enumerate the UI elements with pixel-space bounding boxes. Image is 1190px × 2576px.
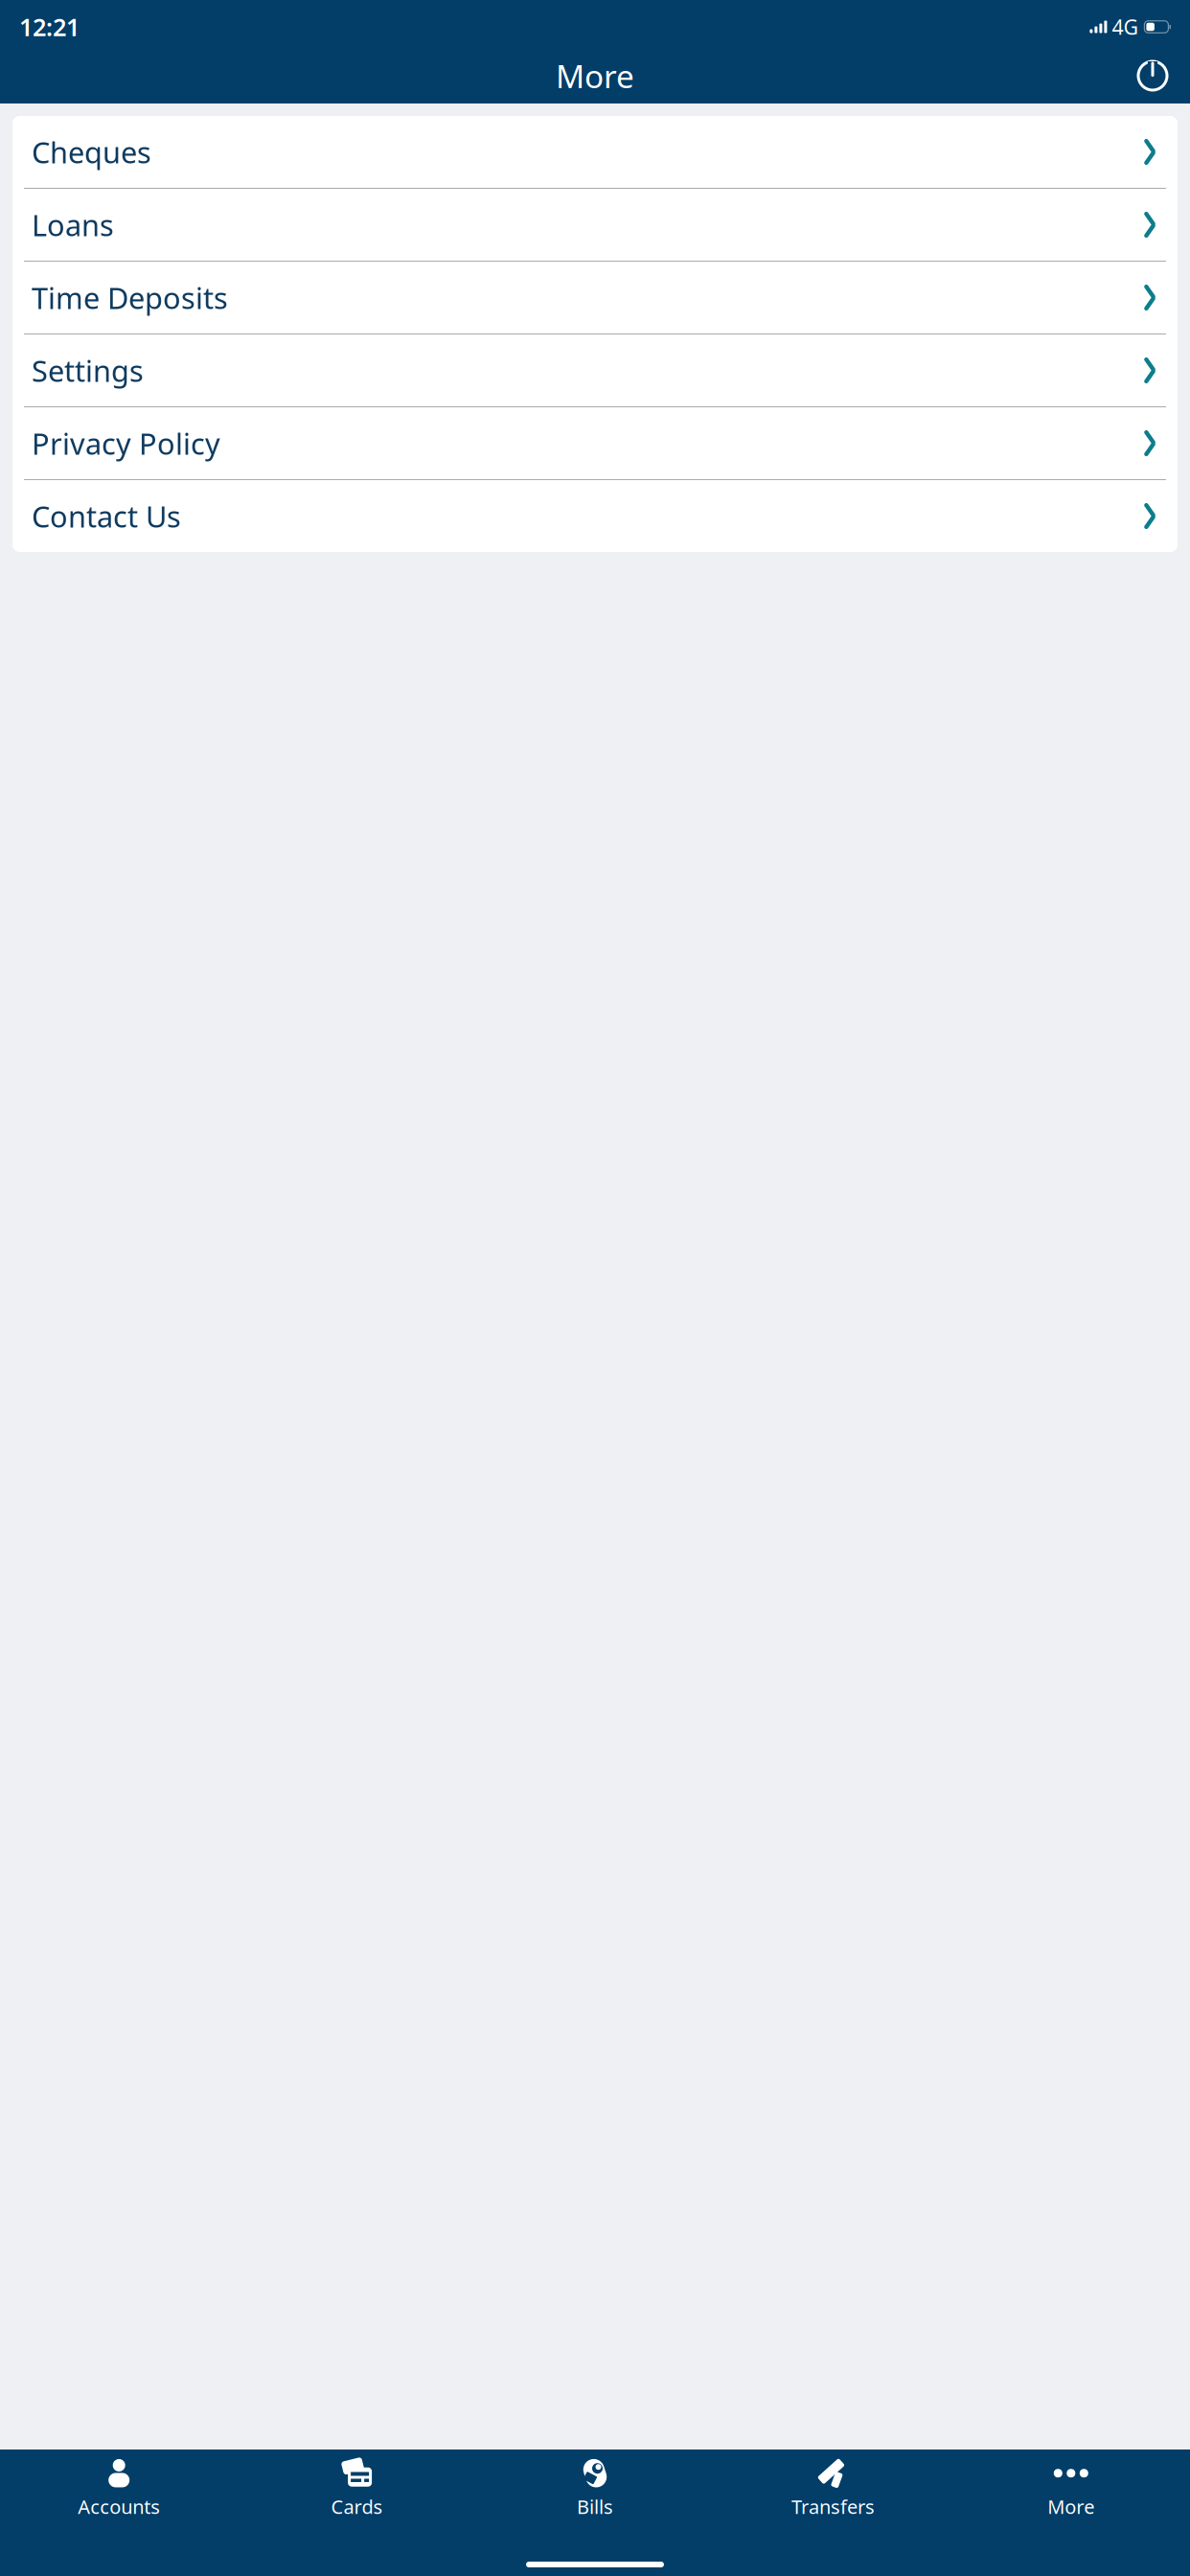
staticText: Privacy Policy — [32, 424, 220, 463]
button[interactable]: Loans — [12, 189, 1178, 261]
staticText: Cheques — [32, 132, 151, 171]
button[interactable]: Time Deposits — [12, 262, 1178, 333]
staticText: Settings — [32, 351, 144, 390]
staticText: Bills — [577, 2494, 613, 2519]
button[interactable]: Bills — [476, 2451, 714, 2519]
staticText: Contact Us — [32, 497, 181, 536]
staticText: Time Deposits — [32, 278, 228, 317]
button[interactable]: Accounts — [0, 2451, 238, 2519]
button[interactable]: Transfers — [714, 2451, 952, 2519]
staticText: 12:21 — [19, 11, 80, 43]
button[interactable]: Cards — [238, 2451, 476, 2519]
button[interactable]: Cheques — [12, 116, 1178, 188]
staticText: Loans — [32, 205, 114, 244]
button[interactable]: Settings — [12, 334, 1178, 406]
staticText: 4G — [1112, 13, 1139, 40]
staticText: Cards — [331, 2494, 383, 2519]
staticText: Accounts — [78, 2494, 160, 2519]
staticText: Transfers — [791, 2494, 875, 2519]
staticText: More — [1048, 2494, 1094, 2519]
button[interactable]: Log out — [1129, 54, 1177, 98]
button[interactable]: Contact Us — [12, 480, 1178, 552]
staticText: More — [556, 55, 634, 97]
button[interactable]: More — [952, 2451, 1190, 2519]
button[interactable]: Privacy Policy — [12, 407, 1178, 479]
